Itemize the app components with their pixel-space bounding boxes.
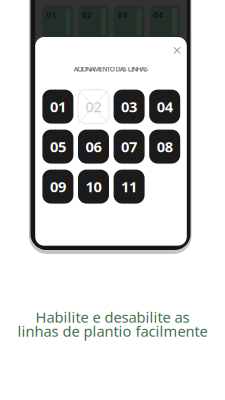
staticText: ACIONAMENTO DAS LINHAS bbox=[74, 65, 148, 73]
button[interactable]: 06 bbox=[78, 130, 109, 164]
button[interactable]: 09 bbox=[42, 170, 73, 204]
staticText: 01 bbox=[46, 9, 56, 20]
button[interactable]: 08 bbox=[149, 130, 180, 164]
staticText: 05 bbox=[50, 137, 66, 156]
staticText: 08 bbox=[157, 137, 173, 156]
button[interactable]: 10 bbox=[78, 170, 109, 204]
staticText: 06 bbox=[85, 137, 101, 156]
staticText: Habilite e desabilite as bbox=[35, 307, 189, 327]
staticText: 10 bbox=[85, 177, 101, 196]
staticText: 01 bbox=[50, 97, 66, 116]
staticText: linhas de plantio facilmente bbox=[17, 321, 207, 341]
button[interactable]: 07 bbox=[114, 130, 145, 164]
staticText: 03 bbox=[121, 97, 137, 116]
staticText: 04 bbox=[153, 9, 163, 20]
button[interactable]: 04 bbox=[149, 90, 180, 124]
button[interactable]: 03 bbox=[114, 90, 145, 124]
staticText: 11 bbox=[121, 177, 137, 196]
staticText: 04 bbox=[157, 97, 173, 116]
staticText: 02 bbox=[82, 9, 92, 20]
staticText: 03 bbox=[118, 9, 128, 20]
button[interactable]: 05 bbox=[42, 130, 73, 164]
button[interactable]: 11 bbox=[114, 170, 145, 204]
button[interactable]: 01 bbox=[42, 90, 73, 124]
staticText: 02 bbox=[85, 97, 101, 116]
staticText: 07 bbox=[121, 137, 137, 156]
button[interactable]: 02 bbox=[78, 90, 109, 124]
staticText: 09 bbox=[50, 177, 66, 196]
button[interactable]: Fechar bbox=[169, 42, 185, 58]
